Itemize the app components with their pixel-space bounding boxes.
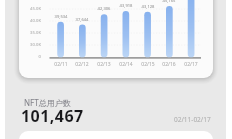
staticText: 0 xyxy=(23,54,41,60)
staticText: 43,918 xyxy=(115,3,137,9)
staticText: 02/16 xyxy=(158,61,180,68)
staticText: 45,165 xyxy=(158,0,180,4)
staticText: 30.0K xyxy=(23,42,41,48)
staticText: 02/15 xyxy=(137,61,159,68)
staticText: 45.0K xyxy=(23,6,41,12)
button[interactable] xyxy=(19,131,213,139)
staticText: 37,644 xyxy=(71,17,93,23)
staticText: 35.0K xyxy=(23,30,41,36)
staticText: 101,467 xyxy=(21,105,84,127)
staticText: 39,534 xyxy=(50,14,72,20)
staticText: 02/12 xyxy=(71,61,93,68)
staticText: 02/13 xyxy=(93,61,115,68)
staticText: NFT总用户数 xyxy=(24,97,71,108)
staticText: 02/11 xyxy=(50,61,72,68)
staticText: 02/11-02/17 xyxy=(174,115,211,124)
staticText: 02/17 xyxy=(180,61,202,68)
button[interactable] xyxy=(19,0,213,78)
staticText: 40.0K xyxy=(23,18,41,24)
staticText: 43,128 xyxy=(137,4,159,10)
staticText: 42,306 xyxy=(93,6,115,12)
staticText: 02/14 xyxy=(115,61,137,68)
